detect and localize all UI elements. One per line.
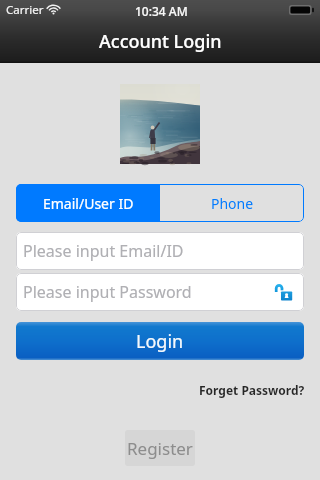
staticText: Please input Password xyxy=(23,281,192,303)
button[interactable]: Register xyxy=(125,430,195,466)
staticText: Please input Email/ID xyxy=(23,240,184,262)
button[interactable]: Login xyxy=(16,322,304,360)
button[interactable]: Email/User ID xyxy=(16,184,160,222)
button[interactable]: Show password xyxy=(275,284,293,301)
staticText: Phone xyxy=(211,194,254,213)
staticText: Account Login xyxy=(99,29,222,54)
staticText: Login xyxy=(136,329,184,354)
staticText: 10:34 AM xyxy=(135,3,188,19)
button[interactable]: Phone xyxy=(160,184,304,222)
button[interactable]: Please input Email/ID xyxy=(16,232,304,270)
staticText: Forget Password? xyxy=(199,382,305,398)
button[interactable]: Please input Password xyxy=(16,273,304,311)
staticText: Carrier xyxy=(6,2,44,18)
button[interactable]: Forget Password? xyxy=(199,382,305,398)
staticText: Email/User ID xyxy=(43,194,134,213)
staticText: Register xyxy=(127,437,193,460)
